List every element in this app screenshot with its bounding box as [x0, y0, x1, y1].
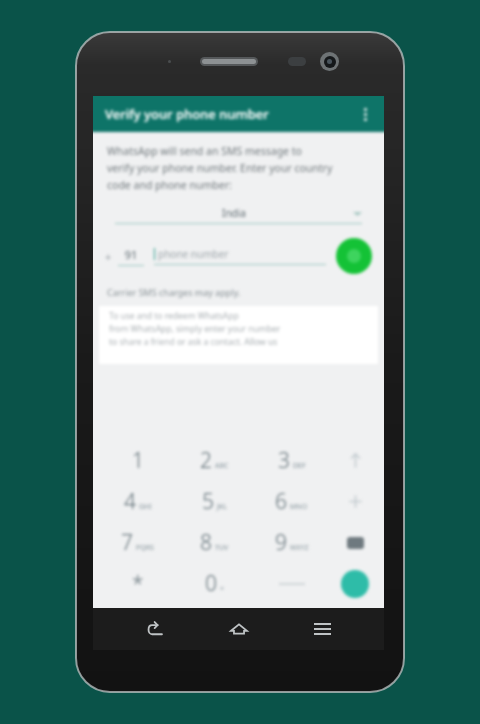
- button[interactable]: Call: [336, 238, 372, 274]
- button[interactable]: Keypad action: [330, 563, 380, 604]
- button[interactable]: phone number: [154, 247, 326, 265]
- staticText: 9: [275, 528, 287, 557]
- staticText: PQRS: [136, 543, 154, 553]
- button[interactable]: 2: [176, 440, 253, 481]
- button[interactable]: 6: [253, 481, 330, 522]
- staticText: +: [105, 249, 112, 264]
- button[interactable]: 5: [176, 481, 253, 522]
- button[interactable]: 9: [253, 522, 330, 563]
- button[interactable]: *: [99, 563, 176, 604]
- button[interactable]: More options: [352, 101, 378, 127]
- staticText: 5: [202, 487, 214, 516]
- staticText: 1: [132, 446, 144, 475]
- button[interactable]: Recent apps: [300, 608, 344, 650]
- staticText: DEF: [293, 461, 306, 471]
- button[interactable]: Home: [217, 608, 261, 650]
- button[interactable]: Back: [133, 608, 177, 650]
- staticText: To use and to redeem WhatsApp from Whats…: [109, 310, 281, 361]
- staticText: MNO: [290, 502, 308, 512]
- button[interactable]: 3: [253, 440, 330, 481]
- staticText: JKL: [217, 502, 227, 512]
- staticText: +: [220, 584, 225, 594]
- staticText: 6: [275, 487, 287, 516]
- staticText: 91: [118, 247, 144, 262]
- staticText: 4: [124, 487, 136, 516]
- staticText: ABC: [215, 461, 229, 471]
- staticText: Carrier SMS charges may apply.: [107, 286, 241, 298]
- staticText: TUV: [215, 543, 229, 553]
- staticText: 0: [205, 569, 217, 598]
- staticText: phone number: [158, 247, 229, 261]
- staticText: 8: [200, 528, 212, 557]
- button[interactable]: 91: [118, 247, 144, 266]
- staticText: India: [115, 206, 353, 220]
- staticText: Verify your phone number: [105, 105, 269, 123]
- button[interactable]: 7: [99, 522, 176, 563]
- button[interactable]: 0: [176, 563, 253, 604]
- button[interactable]: India: [115, 206, 362, 224]
- staticText: *: [132, 569, 144, 598]
- button[interactable]: To use and to redeem WhatsApp from Whats…: [99, 306, 378, 364]
- staticText: WXYZ: [290, 543, 309, 553]
- button[interactable]: 1: [99, 440, 176, 481]
- button[interactable]: Keypad action: [330, 481, 380, 522]
- staticText: 2: [200, 446, 212, 475]
- staticText: 7: [121, 528, 133, 557]
- button[interactable]: Keypad action: [330, 522, 380, 563]
- staticText: WhatsApp will send an SMS message to ver…: [107, 144, 333, 192]
- button[interactable]: 8: [176, 522, 253, 563]
- staticText: 3: [278, 446, 290, 475]
- button[interactable]: Keypad action: [330, 440, 380, 481]
- button[interactable]: 4: [99, 481, 176, 522]
- staticText: GHI: [139, 502, 152, 512]
